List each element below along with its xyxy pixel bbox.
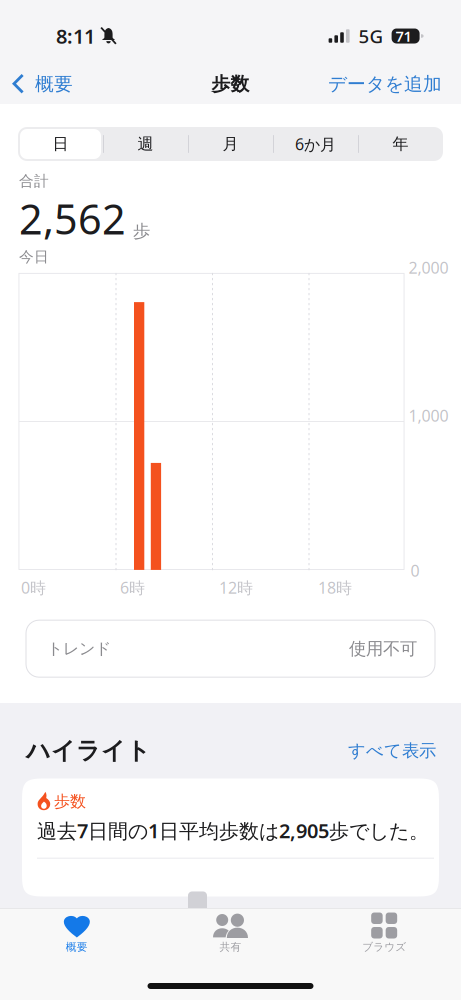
button[interactable]: 共有 <box>154 908 307 960</box>
staticText: 2,000 <box>408 257 448 278</box>
button[interactable]: 概要 <box>0 65 73 102</box>
button[interactable]: 日 <box>18 127 103 161</box>
staticText: すべて表示 <box>348 740 436 761</box>
button[interactable]: ブラウズ <box>307 908 461 960</box>
button[interactable]: 年 <box>358 127 443 161</box>
staticText: 6か月 <box>295 133 336 155</box>
staticText: 12時 <box>219 577 253 598</box>
button[interactable]: データを追加 <box>328 65 461 102</box>
staticText: 歩数 <box>54 791 86 811</box>
staticText: 歩 <box>133 221 150 242</box>
staticText: 今日 <box>19 248 49 266</box>
staticText: 18時 <box>318 577 352 598</box>
staticText: 使用不可 <box>349 638 417 659</box>
button[interactable]: すべて表示 <box>348 740 436 761</box>
staticText: データを追加 <box>328 72 442 95</box>
staticText: 歩数 <box>211 72 249 95</box>
staticText: 2,562 <box>19 191 126 246</box>
button[interactable]: 6か月 <box>273 127 358 161</box>
staticText: 0時 <box>21 577 46 598</box>
staticText: 共有 <box>219 940 241 954</box>
button[interactable]: 歩数 <box>22 778 439 896</box>
staticText: 0 <box>410 560 419 581</box>
staticText: ハイライト <box>26 736 151 765</box>
staticText: ブラウズ <box>362 940 406 954</box>
staticText: トレンド <box>47 639 111 658</box>
button[interactable]: 概要 <box>0 908 154 960</box>
staticText: 年 <box>392 134 408 154</box>
staticText: 6時 <box>120 577 145 598</box>
staticText: 概要 <box>35 72 73 95</box>
staticText: 日 <box>52 134 68 154</box>
staticText: 合計 <box>19 172 49 190</box>
button[interactable]: トレンド <box>26 620 435 677</box>
staticText: 過去7日間の1日平均歩数は2,905歩でした。 <box>37 817 429 844</box>
staticText: 月 <box>222 134 238 154</box>
staticText: 週 <box>137 134 153 154</box>
staticText: 1,000 <box>408 405 448 426</box>
staticText: 5G <box>359 24 384 48</box>
staticText: 8:11 <box>56 23 95 49</box>
staticText: 概要 <box>66 940 88 954</box>
staticText: 71 <box>396 26 412 46</box>
button[interactable]: 月 <box>188 127 273 161</box>
button[interactable]: 週 <box>103 127 188 161</box>
